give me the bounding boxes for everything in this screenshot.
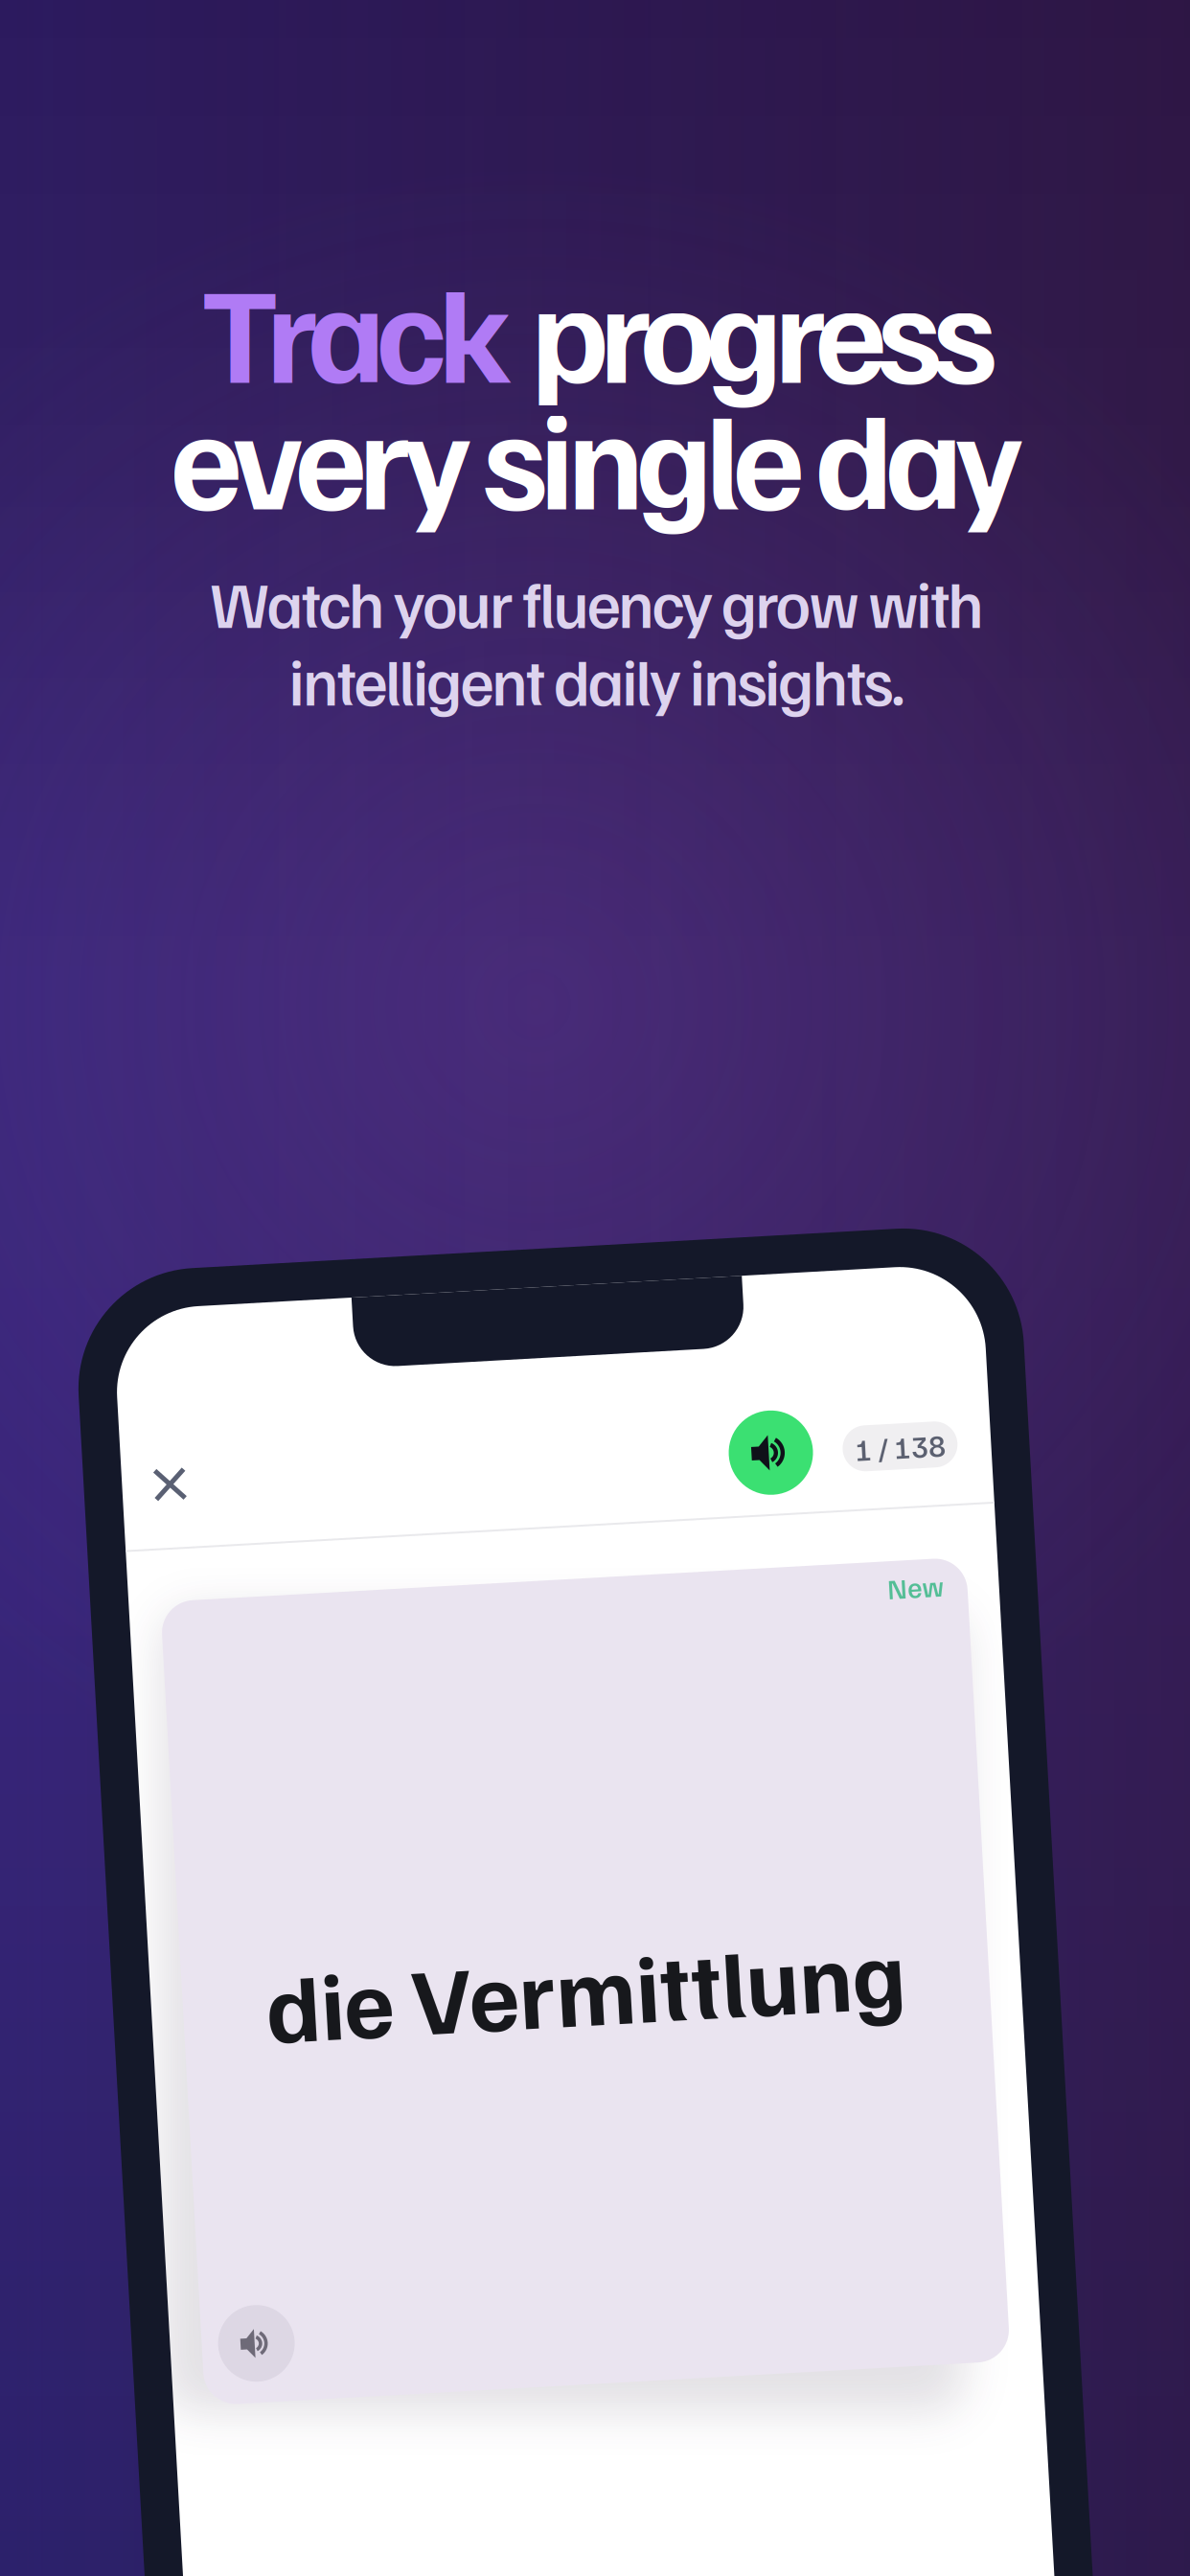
- staticText: 1 / 138: [900, 1445, 991, 1483]
- button[interactable]: 1 / 138: [888, 1441, 1003, 1487]
- staticText: die Vermittlung: [281, 1928, 922, 2047]
- staticText: progress: [513, 244, 997, 413]
- staticText: intelligent daily insights.: [289, 639, 905, 720]
- staticText: New: [925, 1588, 982, 1623]
- staticText: every single day: [171, 371, 1023, 540]
- staticText: Track: [201, 244, 513, 413]
- staticText: Watch your fluency grow with: [210, 561, 984, 643]
- button[interactable]: Play audio: [774, 1421, 858, 1506]
- button[interactable]: Play word audio: [215, 2286, 291, 2362]
